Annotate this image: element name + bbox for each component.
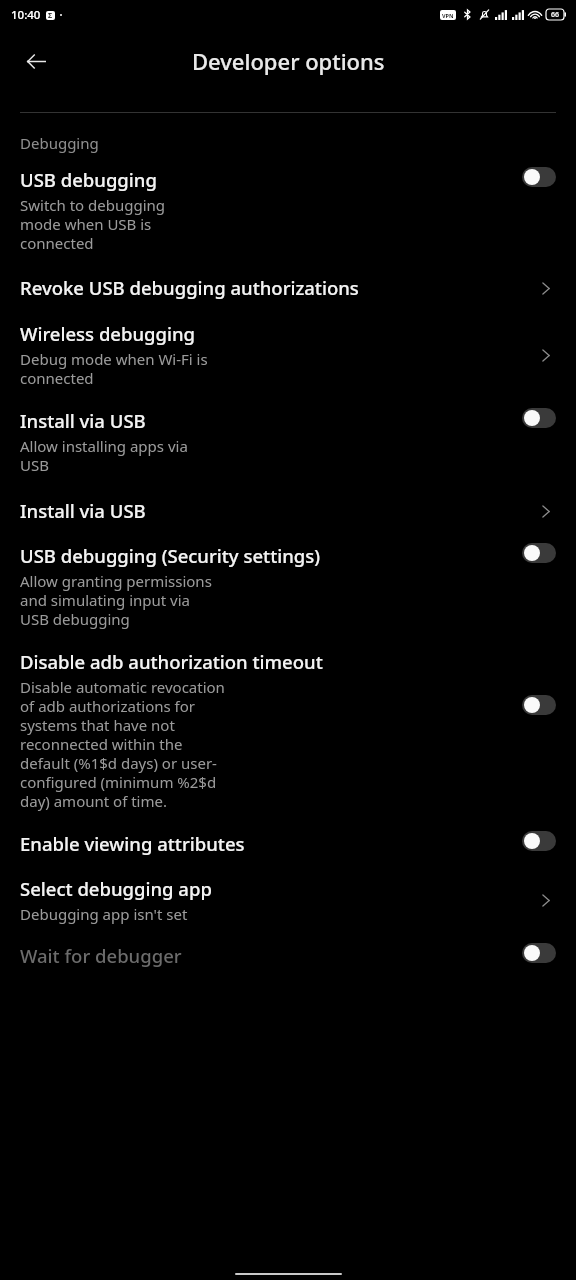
button[interactable]: Wireless debugging — [0, 302, 576, 390]
button[interactable]: Install via USB — [0, 477, 576, 525]
staticText: Enable viewing attributes — [20, 831, 245, 856]
button[interactable]: Toggle — [522, 695, 556, 715]
staticText: 66 — [551, 10, 560, 20]
staticText: Revoke USB debugging authorizations — [20, 275, 359, 300]
button[interactable]: Toggle — [522, 543, 556, 563]
button[interactable]: Disable adb authorization timeout — [0, 631, 576, 813]
staticText: Wireless debugging — [20, 321, 196, 346]
button[interactable]: Toggle — [522, 943, 556, 963]
button[interactable]: Toggle — [522, 831, 556, 851]
staticText: Σ — [48, 11, 53, 20]
staticText: Wait for debugger — [20, 943, 182, 968]
button[interactable]: Toggle — [522, 167, 556, 187]
staticText: Disable adb authorization timeout — [20, 649, 323, 674]
staticText: USB debugging — [20, 167, 157, 192]
staticText: Install via USB — [20, 498, 146, 523]
button[interactable]: Revoke USB debugging authorizations — [0, 255, 576, 302]
staticText: Disable automatic revocation of adb auth… — [20, 677, 225, 811]
staticText: Allow installing apps via USB — [20, 436, 203, 475]
button[interactable]: USB debugging (Security settings) — [0, 525, 576, 631]
button[interactable]: Wait for debugger — [0, 926, 576, 970]
button[interactable]: Back — [14, 39, 58, 83]
staticText: Developer options — [192, 46, 385, 76]
button[interactable]: Install via USB — [0, 390, 576, 477]
button[interactable]: Enable viewing attributes — [0, 813, 576, 858]
button[interactable]: USB debugging — [0, 153, 576, 255]
staticText: VPN — [442, 12, 454, 19]
staticText: Switch to debugging mode when USB is con… — [20, 195, 203, 253]
staticText: Debugging app isn't set — [20, 904, 220, 924]
staticText: 10:40 — [11, 7, 41, 23]
staticText: Install via USB — [20, 408, 146, 433]
staticText: Debug mode when Wi-Fi is connected — [20, 349, 230, 388]
staticText: Allow granting permissions and simulatin… — [20, 571, 213, 629]
staticText: USB debugging (Security settings) — [20, 543, 321, 568]
staticText: Debugging — [20, 133, 99, 153]
staticText: Select debugging app — [20, 876, 212, 901]
button[interactable]: Select debugging app — [0, 858, 576, 926]
button[interactable]: Toggle — [522, 408, 556, 428]
